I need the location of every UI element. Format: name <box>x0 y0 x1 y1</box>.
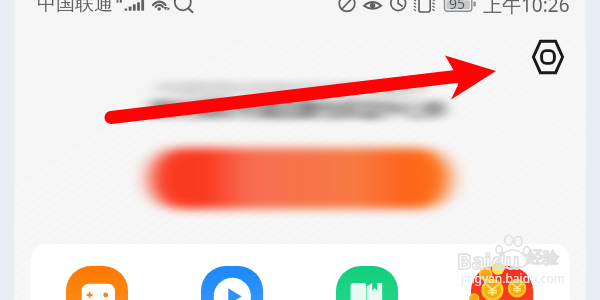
staticText: 中国联通 <box>37 0 113 16</box>
staticText: 95 <box>449 0 466 13</box>
staticText: Baidu <box>457 245 520 275</box>
button[interactable]: Reader <box>336 266 398 300</box>
button[interactable]: Video <box>201 266 263 300</box>
staticText: jingyan.baidu.com <box>461 270 565 286</box>
staticText: 上午10:26 <box>483 0 570 18</box>
staticText: 经验 <box>527 248 559 268</box>
staticText: 中国联通专享福利活动限时领取中 <box>157 79 427 102</box>
button[interactable]: Wallet <box>471 266 533 300</box>
staticText: 限时领取专属流量包权益中心券 <box>151 97 445 123</box>
button[interactable]: Game Center <box>66 266 128 300</box>
button[interactable]: Settings <box>530 39 566 75</box>
